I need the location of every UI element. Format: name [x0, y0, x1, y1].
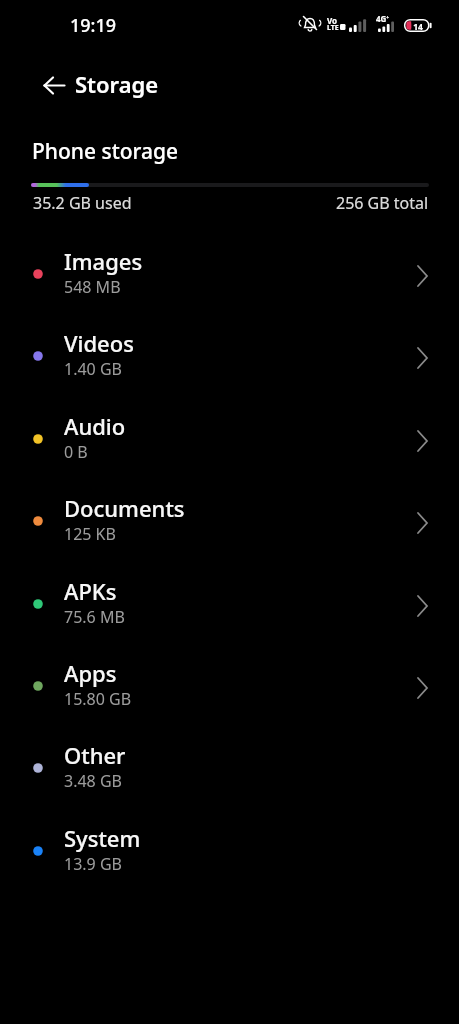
- staticText: Phone storage: [32, 137, 179, 166]
- staticText: 14: [409, 21, 427, 33]
- staticText: 125 KB: [64, 523, 116, 545]
- button[interactable]: System: [0, 810, 459, 892]
- staticText: 548 MB: [64, 276, 121, 298]
- button[interactable]: Audio: [0, 398, 459, 480]
- staticText: 13.9 GB: [64, 853, 122, 875]
- staticText: Images: [64, 246, 143, 276]
- button[interactable]: Documents: [0, 480, 459, 562]
- staticText: APKs: [64, 576, 117, 606]
- staticText: 1.40 GB: [64, 358, 122, 380]
- staticText: Videos: [64, 328, 134, 358]
- staticText: 0 B: [64, 441, 88, 463]
- staticText: 4G⁺: [376, 13, 390, 24]
- staticText: LTE: [327, 23, 339, 33]
- staticText: 15.80 GB: [64, 688, 132, 710]
- staticText: Apps: [64, 658, 117, 688]
- staticText: Storage: [75, 69, 159, 99]
- staticText: Documents: [64, 493, 185, 523]
- button[interactable]: Other: [0, 727, 459, 809]
- button[interactable]: APKs: [0, 563, 459, 645]
- button[interactable]: Apps: [0, 645, 459, 727]
- staticText: 75.6 MB: [64, 606, 125, 628]
- staticText: Other: [64, 740, 126, 770]
- button[interactable]: Videos: [0, 315, 459, 397]
- button[interactable]: Images: [0, 233, 459, 315]
- staticText: 256 GB total: [336, 192, 429, 214]
- staticText: 19:19: [70, 13, 117, 38]
- staticText: Audio: [64, 411, 126, 441]
- button[interactable]: [34, 71, 74, 101]
- staticText: 35.2 GB used: [33, 192, 132, 214]
- staticText: Vo: [327, 15, 338, 26]
- staticText: System: [64, 823, 141, 853]
- staticText: 3.48 GB: [64, 770, 122, 792]
